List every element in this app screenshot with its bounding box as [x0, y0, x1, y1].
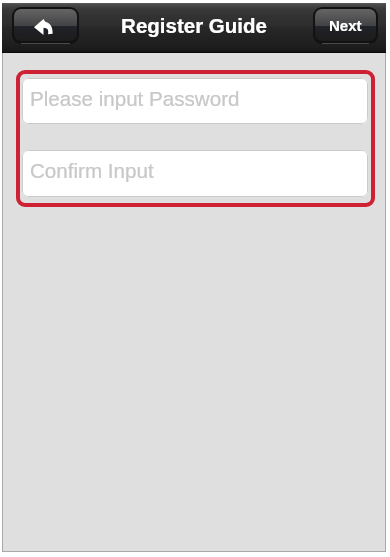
button[interactable]: Back	[12, 7, 79, 44]
staticText: Next	[329, 17, 362, 34]
staticText: Confirm Input	[30, 159, 154, 182]
staticText: Register Guide	[121, 14, 267, 37]
button[interactable]: Please input Password	[22, 78, 368, 124]
button[interactable]: Confirm Input	[22, 150, 368, 197]
staticText: Please input Password	[30, 87, 240, 110]
button[interactable]: Next	[313, 7, 378, 44]
